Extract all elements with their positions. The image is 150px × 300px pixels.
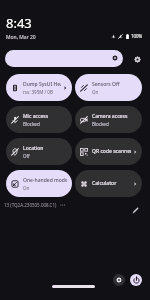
- button[interactable]: Camera access: [75, 106, 142, 133]
- staticText: Calculator: [92, 180, 117, 187]
- button[interactable]: Search settings: [5, 50, 123, 67]
- button[interactable]: Power: [130, 274, 142, 286]
- staticText: Blocked: [23, 121, 40, 127]
- button[interactable]: Sensors Off: [75, 74, 142, 101]
- button[interactable]: Settings: [113, 274, 125, 286]
- staticText: Off: [23, 153, 30, 159]
- staticText: rss: 395M / 0B: [23, 89, 53, 95]
- staticText: 100%: [131, 33, 143, 39]
- staticText: Location: [23, 145, 44, 152]
- button[interactable]: Location: [6, 138, 72, 165]
- staticText: Mon, Mar 20: [6, 34, 36, 41]
- staticText: On: [23, 185, 30, 191]
- staticText: Blocked: [92, 121, 109, 127]
- staticText: QR code scanner: [92, 148, 131, 155]
- staticText: 13 (TQ2A.230505.008.C1): [4, 202, 57, 208]
- button[interactable]: Edit tiles: [130, 205, 141, 216]
- staticText: 8:43: [6, 14, 32, 32]
- button[interactable]: Calculator: [75, 170, 142, 197]
- button[interactable]: One-handed mode: [6, 170, 72, 197]
- staticText: On: [92, 89, 99, 95]
- button[interactable]: QR code scanner: [75, 138, 142, 165]
- staticText: Mic access: [23, 113, 49, 120]
- button[interactable]: Settings: [130, 52, 144, 66]
- staticText: Dump SysUI Heap: [23, 81, 61, 88]
- staticText: One-handed mode: [23, 177, 67, 184]
- staticText: Camera access: [92, 113, 128, 120]
- button[interactable]: Dump SysUI Heap: [6, 74, 72, 101]
- button[interactable]: Mic access: [6, 106, 72, 133]
- staticText: Sensors Off: [92, 81, 120, 88]
